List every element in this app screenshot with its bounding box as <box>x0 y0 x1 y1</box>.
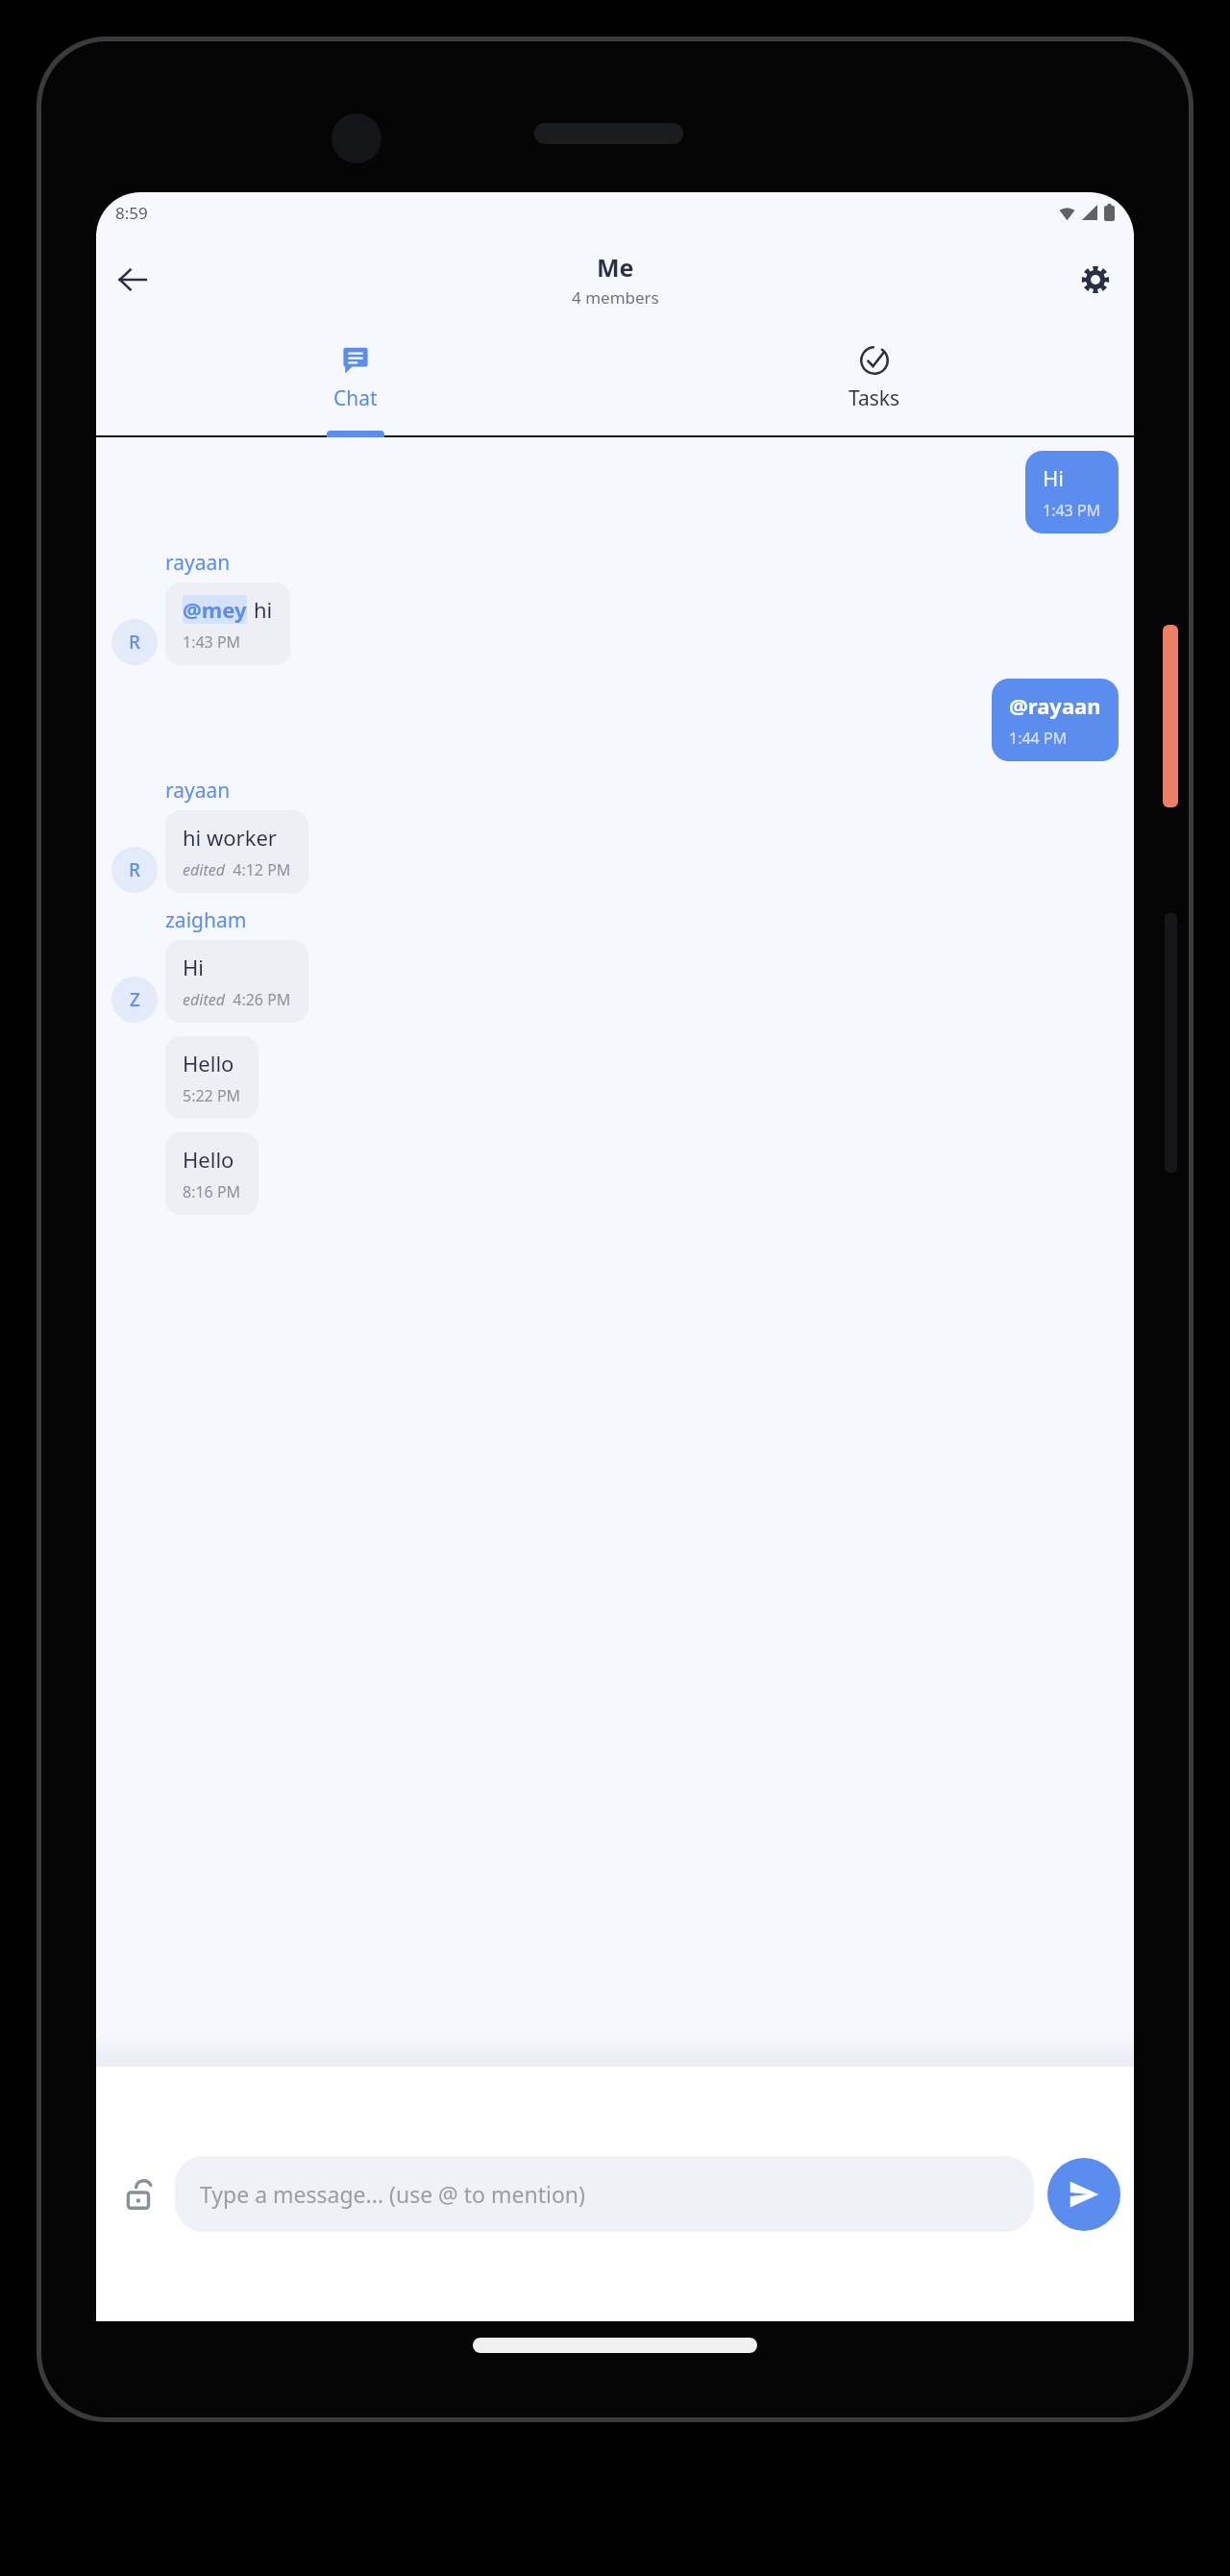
button[interactable]: Send <box>1047 2158 1120 2231</box>
staticText: rayaan <box>165 549 231 577</box>
button[interactable]: Type a message... (use @ to mention) <box>175 2156 1034 2232</box>
staticText: zaigham <box>165 906 247 934</box>
staticText: 1:44 PM <box>1009 728 1068 749</box>
staticText: hi <box>254 595 273 624</box>
button[interactable]: Tasks <box>615 327 1134 431</box>
button[interactable]: R <box>111 847 158 893</box>
staticText: Me <box>597 251 634 284</box>
staticText: 5:22 PM <box>183 1085 241 1106</box>
staticText: edited 4:26 PM <box>183 989 291 1010</box>
button[interactable]: R <box>111 619 158 665</box>
staticText: R <box>129 857 141 882</box>
button[interactable]: Z <box>111 977 158 1023</box>
staticText: Hi <box>183 953 204 981</box>
button[interactable]: @rayaan <box>992 679 1119 761</box>
staticText: hi worker <box>183 823 277 852</box>
staticText: @rayaan <box>1009 691 1101 720</box>
button[interactable]: Settings <box>1069 253 1122 307</box>
staticText: 1:43 PM <box>183 632 241 653</box>
staticText: edited 4:12 PM <box>183 859 291 880</box>
button[interactable]: Hello <box>165 1036 258 1119</box>
button[interactable]: Back <box>106 253 160 307</box>
staticText: Type a message... (use @ to mention) <box>200 2179 585 2209</box>
button[interactable]: @mey <box>165 582 290 665</box>
button[interactable]: Hi <box>1025 451 1119 533</box>
staticText: Hello <box>183 1145 234 1174</box>
staticText: 8:16 PM <box>183 1181 241 1202</box>
staticText: Hi <box>1043 463 1064 492</box>
staticText: Hello <box>183 1049 234 1077</box>
staticText: Chat <box>333 384 378 412</box>
button[interactable]: Encryption off <box>110 2165 169 2224</box>
staticText: 8:59 <box>115 202 148 224</box>
staticText: 4 members <box>572 286 659 309</box>
staticText: @mey <box>183 595 247 624</box>
staticText: R <box>129 630 141 655</box>
button[interactable]: Hello <box>165 1132 258 1215</box>
button[interactable]: Hi <box>165 940 308 1023</box>
staticText: Z <box>130 987 140 1012</box>
button[interactable]: hi worker <box>165 810 308 893</box>
staticText: 1:43 PM <box>1043 500 1101 521</box>
staticText: rayaan <box>165 777 231 805</box>
button[interactable]: Chat <box>96 327 615 431</box>
staticText: Tasks <box>849 384 900 412</box>
